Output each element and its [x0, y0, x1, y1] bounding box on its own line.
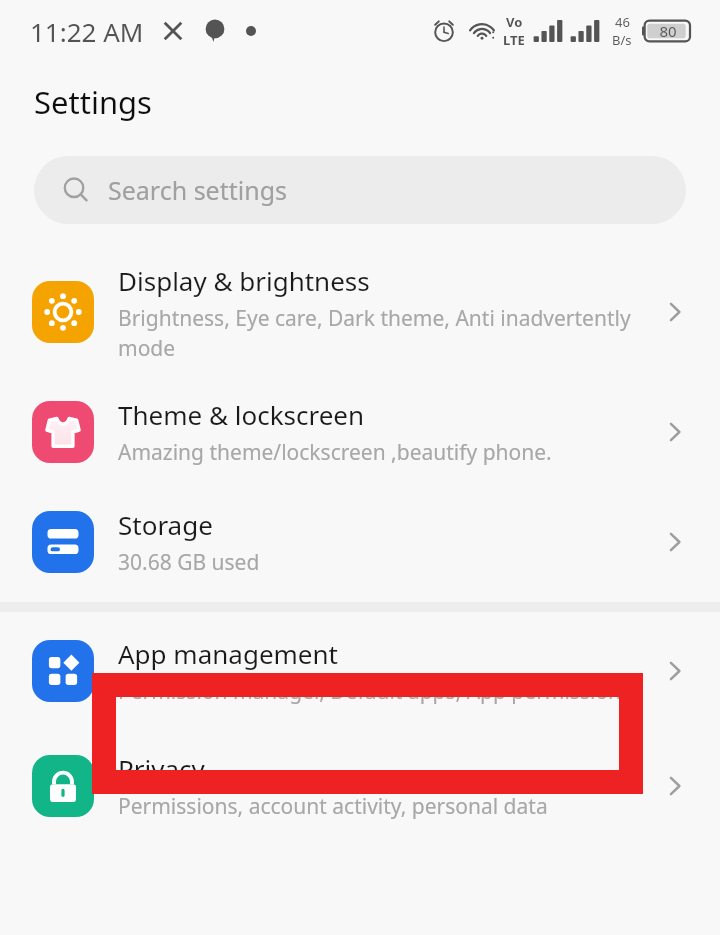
button[interactable]: Search settings: [34, 156, 686, 224]
staticText: 11:22 AM: [30, 14, 144, 49]
other: Open App management: [658, 654, 692, 688]
staticText: 46: [615, 13, 630, 31]
staticText: Amazing theme/lockscreen ,beautify phone…: [118, 438, 552, 467]
staticText: Storage: [118, 507, 213, 542]
staticText: Settings: [34, 81, 152, 123]
staticText: App management: [118, 636, 338, 671]
staticText: Permission manager, Default apps, App pe…: [118, 677, 632, 706]
other: Open Storage: [658, 525, 692, 559]
staticText: Search settings: [108, 173, 288, 207]
staticText: Privacy: [118, 751, 205, 786]
other: Open Theme & lockscreen: [658, 415, 692, 449]
staticText: Permissions, account activity, personal …: [118, 792, 548, 821]
staticText: 30.68 GB used: [118, 548, 260, 577]
button[interactable]: Theme & lockscreen: [0, 376, 720, 488]
button[interactable]: App management: [0, 612, 720, 730]
other: Open Privacy: [658, 769, 692, 803]
staticText: LTE: [503, 31, 525, 49]
button[interactable]: Storage: [0, 488, 720, 596]
other: Open Display & brightness: [658, 295, 692, 329]
staticText: Brightness, Eye care, Dark theme, Anti i…: [118, 304, 646, 362]
staticText: B/s: [612, 31, 632, 49]
staticText: Display & brightness: [118, 263, 370, 298]
button[interactable]: Privacy: [0, 730, 720, 842]
staticText: Theme & lockscreen: [118, 397, 365, 432]
button[interactable]: Display & brightness: [0, 248, 720, 376]
staticText: Vo: [506, 13, 523, 31]
staticText: 80: [659, 21, 677, 41]
